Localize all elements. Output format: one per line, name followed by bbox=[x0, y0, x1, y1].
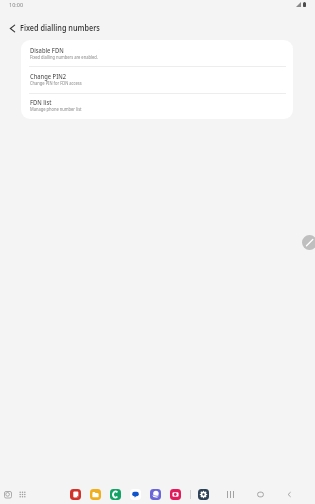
button[interactable]: Home bbox=[254, 488, 266, 500]
staticText: Fixed dialling numbers are enabled. bbox=[30, 54, 99, 60]
button[interactable]: Recents bbox=[224, 488, 236, 500]
staticText: Manage phone number list bbox=[30, 106, 82, 112]
button[interactable]: Settings bbox=[198, 489, 209, 500]
button[interactable]: My Files bbox=[90, 489, 101, 500]
button[interactable]: Change PIN2 bbox=[21, 66, 293, 93]
button[interactable]: Edit bbox=[302, 235, 315, 250]
staticText: Change PIN for FDN access bbox=[30, 80, 82, 86]
button[interactable]: Recent apps history bbox=[2, 489, 13, 500]
button[interactable]: Samsung Notes bbox=[70, 489, 81, 500]
staticText: FDN list bbox=[30, 98, 52, 107]
button[interactable]: Back bbox=[283, 488, 295, 500]
button[interactable]: FDN list bbox=[21, 92, 293, 118]
button[interactable]: Disable FDN bbox=[21, 40, 293, 66]
button[interactable]: All apps bbox=[17, 489, 28, 500]
button[interactable]: Calculator bbox=[110, 489, 121, 500]
button[interactable]: Camera bbox=[170, 489, 181, 500]
button[interactable]: Navigate up bbox=[3, 19, 21, 37]
staticText: Change PIN2 bbox=[30, 72, 67, 81]
staticText: 10:00 bbox=[9, 1, 24, 9]
button[interactable]: Internet bbox=[150, 489, 161, 500]
staticText: Disable FDN bbox=[30, 46, 64, 55]
staticText: Fixed dialling numbers bbox=[20, 22, 100, 34]
button[interactable]: Messages bbox=[130, 489, 141, 500]
